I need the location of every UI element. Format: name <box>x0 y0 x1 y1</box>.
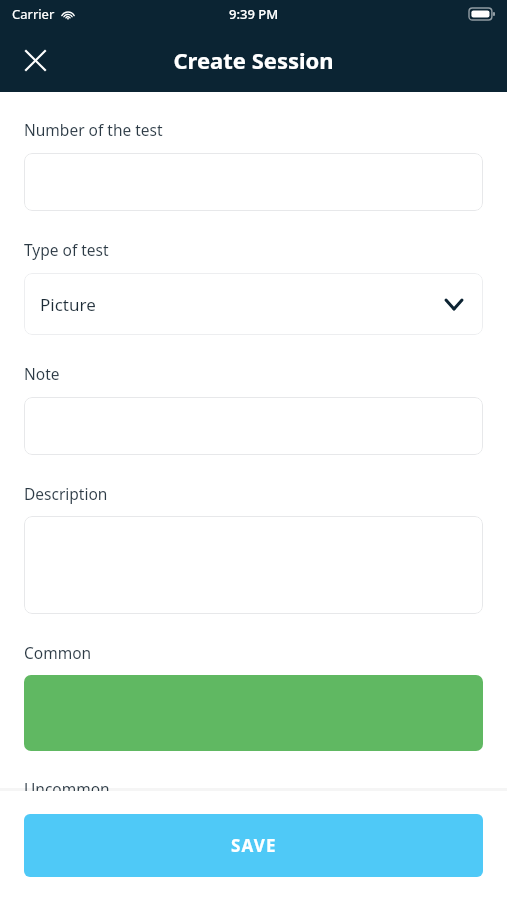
staticText: Description <box>24 483 108 504</box>
staticText: Note <box>24 363 60 384</box>
button[interactable] <box>24 675 483 751</box>
button[interactable] <box>24 397 483 455</box>
button[interactable] <box>24 516 483 614</box>
staticText: Common <box>24 642 92 663</box>
staticText: Type of test <box>24 239 109 260</box>
staticText: Uncommon <box>24 778 110 799</box>
staticText: SAVE <box>231 834 277 857</box>
staticText: Carrier <box>12 5 55 23</box>
staticText: Number of the test <box>24 119 163 140</box>
staticText: Picture <box>40 293 96 316</box>
button[interactable]: Picture <box>24 273 483 335</box>
button[interactable]: Close <box>14 39 56 81</box>
staticText: 9:39 PM <box>229 5 279 23</box>
staticText: Create Session <box>173 45 334 75</box>
button[interactable] <box>24 153 483 211</box>
button[interactable]: SAVE <box>24 814 483 877</box>
